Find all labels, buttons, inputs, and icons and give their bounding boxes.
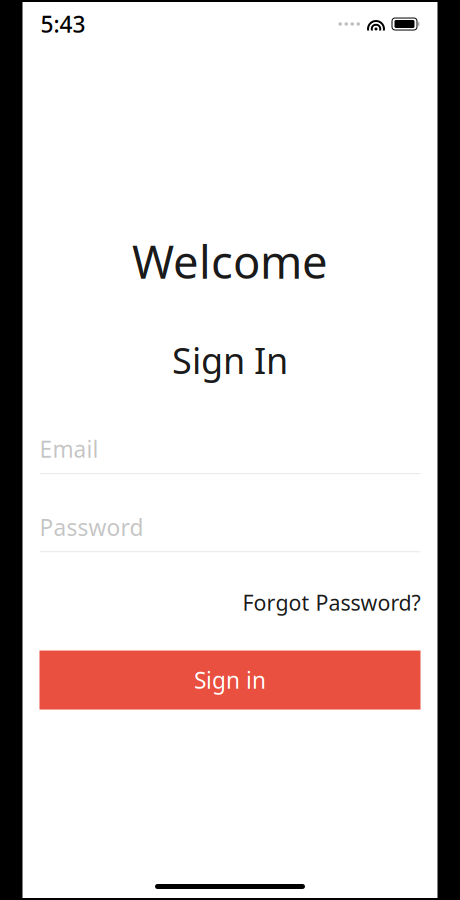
- staticText: Forgot Password?: [242, 588, 420, 616]
- staticText: Sign In: [172, 336, 288, 384]
- button[interactable]: Sign in: [39, 650, 420, 709]
- staticText: 5:43: [40, 9, 85, 39]
- staticText: Welcome: [132, 231, 328, 291]
- staticText: Sign in: [194, 665, 266, 695]
- staticText: Email: [39, 434, 98, 464]
- button[interactable]: Forgot Password?: [39, 582, 420, 622]
- staticText: Password: [39, 512, 143, 542]
